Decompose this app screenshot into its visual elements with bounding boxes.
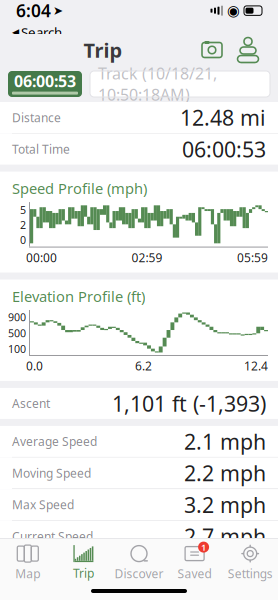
button[interactable]: Moving Speed	[0, 457, 278, 489]
button[interactable]: 1	[167, 539, 222, 585]
button[interactable]: Discover	[111, 539, 167, 585]
button[interactable]: Max Speed	[0, 489, 278, 521]
staticText: 5	[20, 203, 26, 217]
button[interactable]: Take photo	[194, 36, 230, 64]
button[interactable]: Share trip	[230, 36, 266, 64]
button[interactable]: Track (10/18/21, 10:50:18AM)	[90, 71, 270, 97]
staticText: 12.48 mi	[180, 103, 266, 132]
staticText: 0.0	[26, 358, 43, 374]
staticText: Settings	[228, 566, 273, 581]
staticText: 06:00:53	[182, 135, 266, 163]
button[interactable]: Settings	[222, 539, 278, 585]
staticText: 1	[201, 541, 206, 553]
button[interactable]: Total Time	[0, 134, 278, 165]
staticText: 2	[20, 218, 26, 232]
staticText: 6.2	[135, 358, 152, 374]
staticText: Ascent	[12, 395, 50, 411]
staticText: Distance	[12, 109, 61, 125]
staticText: Total Time	[12, 141, 70, 157]
staticText: 02:59	[131, 250, 162, 265]
staticText: 05:59	[237, 250, 268, 265]
staticText: Search	[21, 23, 62, 41]
button[interactable]: Current Speed	[0, 521, 278, 552]
staticText: Track (10/18/21, 10:50:18AM)	[98, 63, 217, 105]
staticText: Max Speed	[12, 497, 74, 513]
button[interactable]: Map	[0, 539, 56, 585]
staticText: ◀	[12, 27, 19, 37]
staticText: 06:00:53	[14, 70, 76, 92]
button[interactable]: Average Speed	[0, 426, 278, 457]
staticText: ◉	[227, 2, 240, 19]
staticText: 2.7 mph	[184, 522, 266, 550]
staticText: 900	[8, 310, 26, 324]
staticText: 2.1 mph	[184, 427, 266, 456]
staticText: 6:04	[16, 0, 51, 22]
staticText: ➤	[53, 4, 63, 17]
staticText: 3.2 mph	[184, 490, 266, 519]
button[interactable]: 06:00:53	[8, 71, 82, 97]
staticText: Elevation Profile (ft)	[12, 286, 145, 306]
staticText: 1,101 ft (-1,393)	[112, 389, 266, 418]
staticText: Speed Profile (mph)	[12, 179, 147, 198]
button[interactable]: Trip	[56, 539, 111, 585]
staticText: 0	[20, 233, 26, 247]
staticText: Trip	[73, 565, 94, 581]
staticText: Map	[15, 566, 40, 581]
staticText: Average Speed	[12, 433, 97, 449]
staticText: 12.4	[244, 358, 268, 374]
staticText: 00:00	[26, 250, 57, 265]
staticText: 100	[8, 342, 26, 356]
button[interactable]: Distance	[0, 102, 278, 134]
staticText: Current Speed	[12, 528, 93, 544]
staticText: Trip	[83, 37, 122, 63]
staticText: Discover	[114, 566, 163, 581]
staticText: 500	[8, 326, 26, 340]
staticText: Saved	[178, 566, 212, 581]
staticText: Moving Speed	[12, 465, 91, 481]
staticText: 2.2 mph	[184, 459, 266, 487]
button[interactable]: Ascent	[0, 388, 278, 419]
